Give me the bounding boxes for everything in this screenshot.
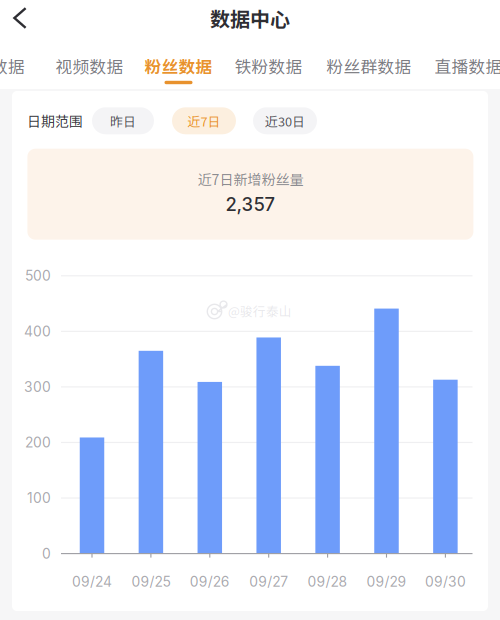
staticText: 09/26 [190,573,230,590]
staticText: 昨日 [110,111,136,130]
staticText: 粉丝数据 [144,54,212,78]
staticText: 200 [25,434,51,451]
staticText: 数据中心 [210,3,290,32]
staticText: 直播数据 [434,54,500,78]
staticText: 铁粉数据 [234,54,302,78]
staticText: 300 [24,378,51,395]
staticText: @骏行泰山 [228,302,292,320]
staticText: 近30日 [265,111,305,130]
staticText: 日期范围 [27,111,83,131]
button[interactable]: 粉丝群数据 [314,55,424,85]
staticText: 100 [27,490,51,506]
button[interactable]: 铁粉数据 [223,55,314,85]
staticText: 09/25 [131,573,170,590]
staticText: 09/24 [72,573,112,590]
staticText: 09/30 [425,573,466,590]
staticText: 09/29 [366,573,406,590]
button[interactable]: 近30日 [253,107,317,134]
button[interactable]: 视频数据 [45,55,134,85]
button[interactable]: 昨日 [92,107,154,134]
button[interactable]: 直播数据 [424,55,500,85]
staticText: 09/28 [308,573,348,590]
staticText: 2,357 [225,193,275,215]
button[interactable]: 近7日 [172,107,236,134]
staticText: 09/27 [249,573,288,590]
staticText: 视频数据 [55,54,123,78]
button[interactable]: 粉丝数据 [134,55,223,85]
staticText: 粉丝群数据 [326,54,411,78]
staticText: 数据 [0,54,25,78]
staticText: 0 [42,545,51,562]
button[interactable]: 数据 [0,55,37,85]
button[interactable]: 返回 [0,7,27,29]
staticText: 400 [24,323,51,340]
staticText: 近7日新增粉丝量 [197,169,303,189]
staticText: 近7日 [187,111,220,130]
staticText: 500 [25,267,51,284]
